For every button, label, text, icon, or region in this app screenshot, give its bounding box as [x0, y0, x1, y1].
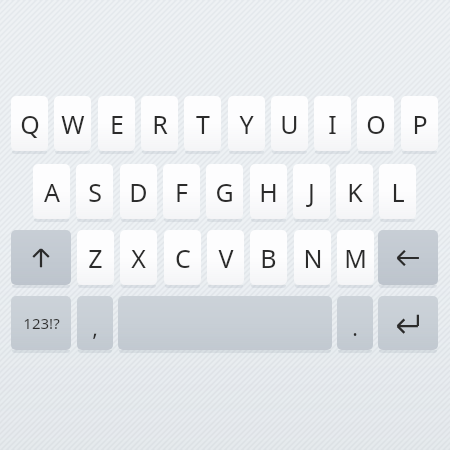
button[interactable]: F — [163, 164, 200, 219]
button[interactable]: L — [379, 164, 416, 219]
button[interactable]: O — [357, 96, 394, 151]
staticText: S — [88, 175, 102, 209]
button[interactable]: Space — [118, 296, 332, 350]
staticText: N — [303, 241, 323, 275]
staticText: X — [131, 241, 146, 275]
button[interactable]: H — [250, 164, 287, 219]
button[interactable]: M — [337, 230, 374, 285]
button[interactable]: W — [54, 96, 91, 151]
staticText: G — [215, 175, 234, 209]
button[interactable]: Z — [77, 230, 114, 285]
staticText: E — [110, 107, 124, 141]
button[interactable]: 123!? — [11, 296, 71, 350]
button[interactable]: I — [314, 96, 351, 151]
button[interactable]: U — [271, 96, 308, 151]
button[interactable]: Enter — [378, 296, 438, 350]
staticText: U — [280, 107, 299, 141]
staticText: J — [308, 175, 315, 209]
button[interactable]: Shift — [11, 230, 71, 285]
staticText: W — [61, 107, 85, 141]
staticText: F — [175, 175, 188, 209]
staticText: T — [196, 107, 210, 141]
button[interactable]: K — [336, 164, 373, 219]
button[interactable]: Backspace — [378, 230, 438, 285]
button[interactable]: C — [164, 230, 201, 285]
staticText: O — [366, 107, 386, 141]
staticText: I — [328, 107, 337, 141]
staticText: A — [44, 175, 60, 209]
button[interactable]: R — [141, 96, 178, 151]
staticText: Q — [20, 107, 40, 141]
staticText: 123!? — [23, 313, 60, 333]
button[interactable]: G — [206, 164, 243, 219]
staticText: D — [129, 175, 148, 209]
button[interactable]: N — [294, 230, 331, 285]
button[interactable]: J — [293, 164, 330, 219]
button[interactable]: Y — [228, 96, 265, 151]
button[interactable]: Q — [11, 96, 48, 151]
button[interactable]: , — [77, 296, 113, 350]
staticText: K — [347, 175, 363, 209]
button[interactable]: D — [120, 164, 157, 219]
button[interactable]: P — [401, 96, 438, 151]
staticText: Y — [239, 107, 254, 141]
staticText: Z — [88, 241, 103, 275]
button[interactable]: S — [76, 164, 113, 219]
staticText: B — [260, 241, 277, 275]
staticText: R — [152, 107, 168, 141]
button[interactable]: T — [184, 96, 221, 151]
staticText: , — [92, 314, 98, 343]
button[interactable]: V — [207, 230, 244, 285]
staticText: H — [259, 175, 278, 209]
staticText: L — [391, 175, 405, 209]
button[interactable]: X — [120, 230, 157, 285]
staticText: P — [412, 107, 428, 141]
button[interactable]: A — [33, 164, 70, 219]
staticText: V — [218, 241, 234, 275]
button[interactable]: . — [337, 296, 373, 350]
staticText: . — [352, 314, 358, 343]
button[interactable]: B — [250, 230, 287, 285]
button[interactable]: E — [98, 96, 135, 151]
staticText: M — [344, 241, 367, 275]
staticText: C — [175, 241, 191, 275]
